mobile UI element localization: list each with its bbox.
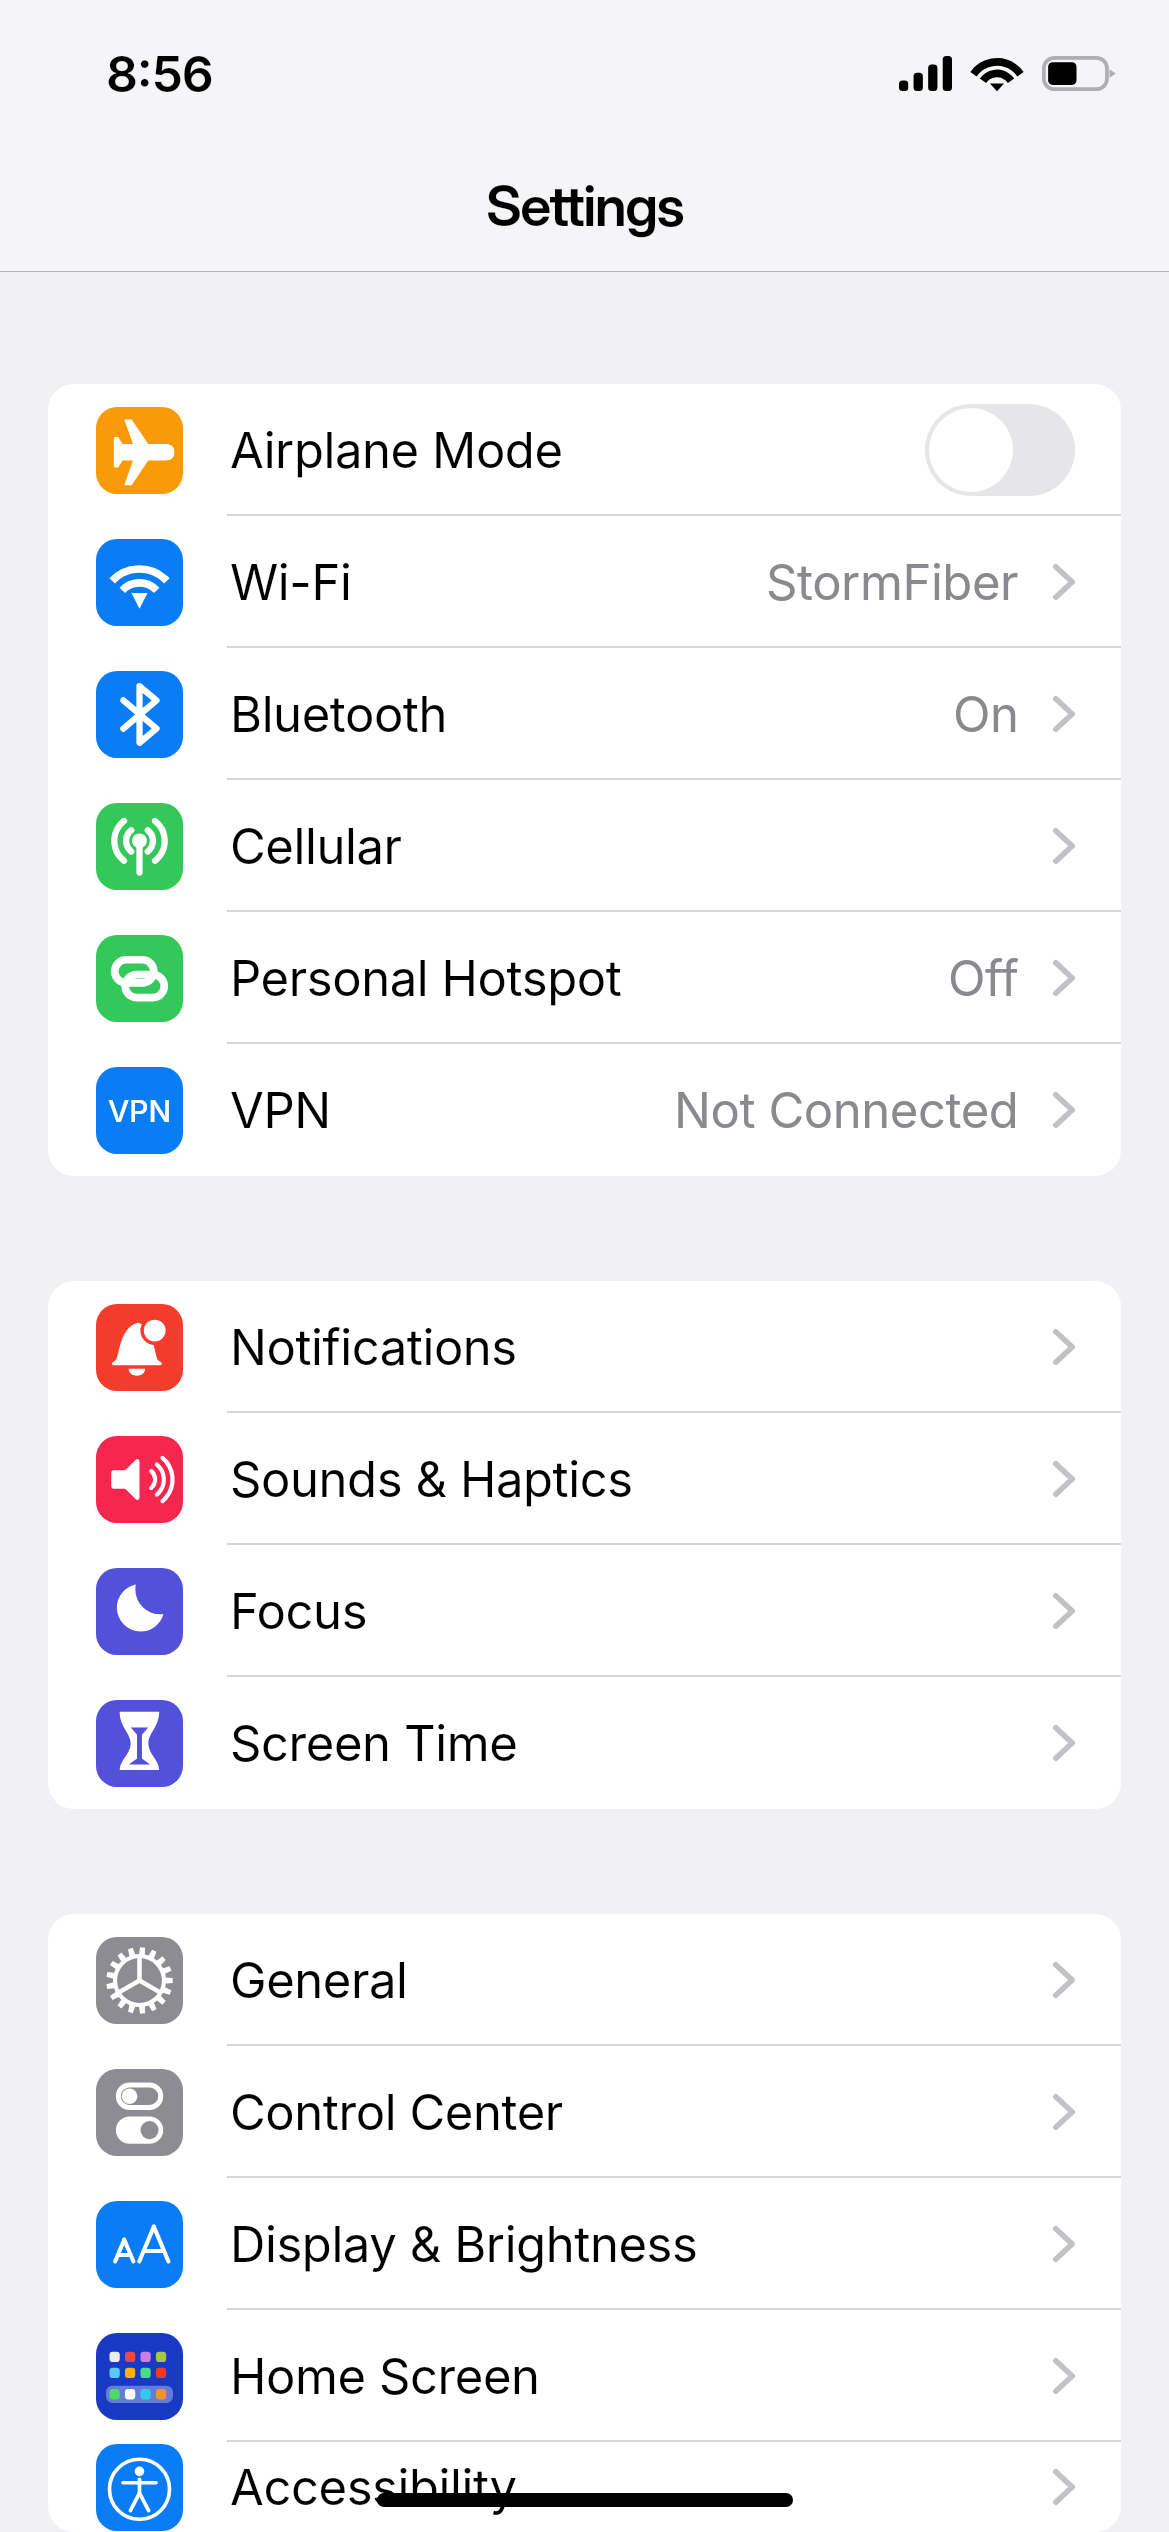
staticText: Accessibility: [230, 2458, 517, 2517]
button[interactable]: VPN: [48, 1044, 1121, 1176]
staticText: Display & Brightness: [230, 2215, 698, 2274]
button[interactable]: Home Screen: [48, 2310, 1121, 2442]
button[interactable]: Accessibility: [48, 2442, 1121, 2532]
button[interactable]: Screen Time: [48, 1677, 1121, 1809]
button[interactable]: Sounds & Haptics: [48, 1413, 1121, 1545]
staticText: Screen Time: [230, 1714, 518, 1773]
button[interactable]: Display & Brightness: [48, 2178, 1121, 2310]
button[interactable]: Airplane Mode: [48, 384, 1121, 516]
button[interactable]: Focus: [48, 1545, 1121, 1677]
staticText: General: [230, 1951, 408, 2010]
staticText: On: [953, 685, 1019, 744]
button[interactable]: Notifications: [48, 1281, 1121, 1413]
button[interactable]: Personal Hotspot: [48, 912, 1121, 1044]
staticText: VPN: [230, 1081, 331, 1140]
button[interactable]: General: [48, 1914, 1121, 2046]
staticText: StormFiber: [766, 553, 1019, 612]
staticText: Notifications: [230, 1318, 517, 1377]
button[interactable]: Bluetooth: [48, 648, 1121, 780]
button[interactable]: Cellular: [48, 780, 1121, 912]
staticText: Home Screen: [230, 2347, 540, 2406]
staticText: Airplane Mode: [230, 421, 563, 480]
staticText: VPN: [108, 1093, 172, 1129]
button[interactable]: Control Center: [48, 2046, 1121, 2178]
staticText: Settings: [486, 172, 684, 240]
button[interactable]: Airplane Mode toggle, off: [925, 404, 1075, 496]
staticText: Focus: [230, 1582, 368, 1641]
staticText: Cellular: [230, 817, 402, 876]
button[interactable]: Wi-Fi: [48, 516, 1121, 648]
staticText: 8:56: [106, 44, 213, 104]
staticText: Not Connected: [674, 1081, 1019, 1140]
staticText: Sounds & Haptics: [230, 1450, 633, 1509]
staticText: Personal Hotspot: [230, 949, 622, 1008]
staticText: Off: [948, 949, 1019, 1008]
staticText: Wi-Fi: [230, 553, 352, 612]
staticText: Bluetooth: [230, 685, 448, 744]
staticText: Control Center: [230, 2083, 563, 2142]
